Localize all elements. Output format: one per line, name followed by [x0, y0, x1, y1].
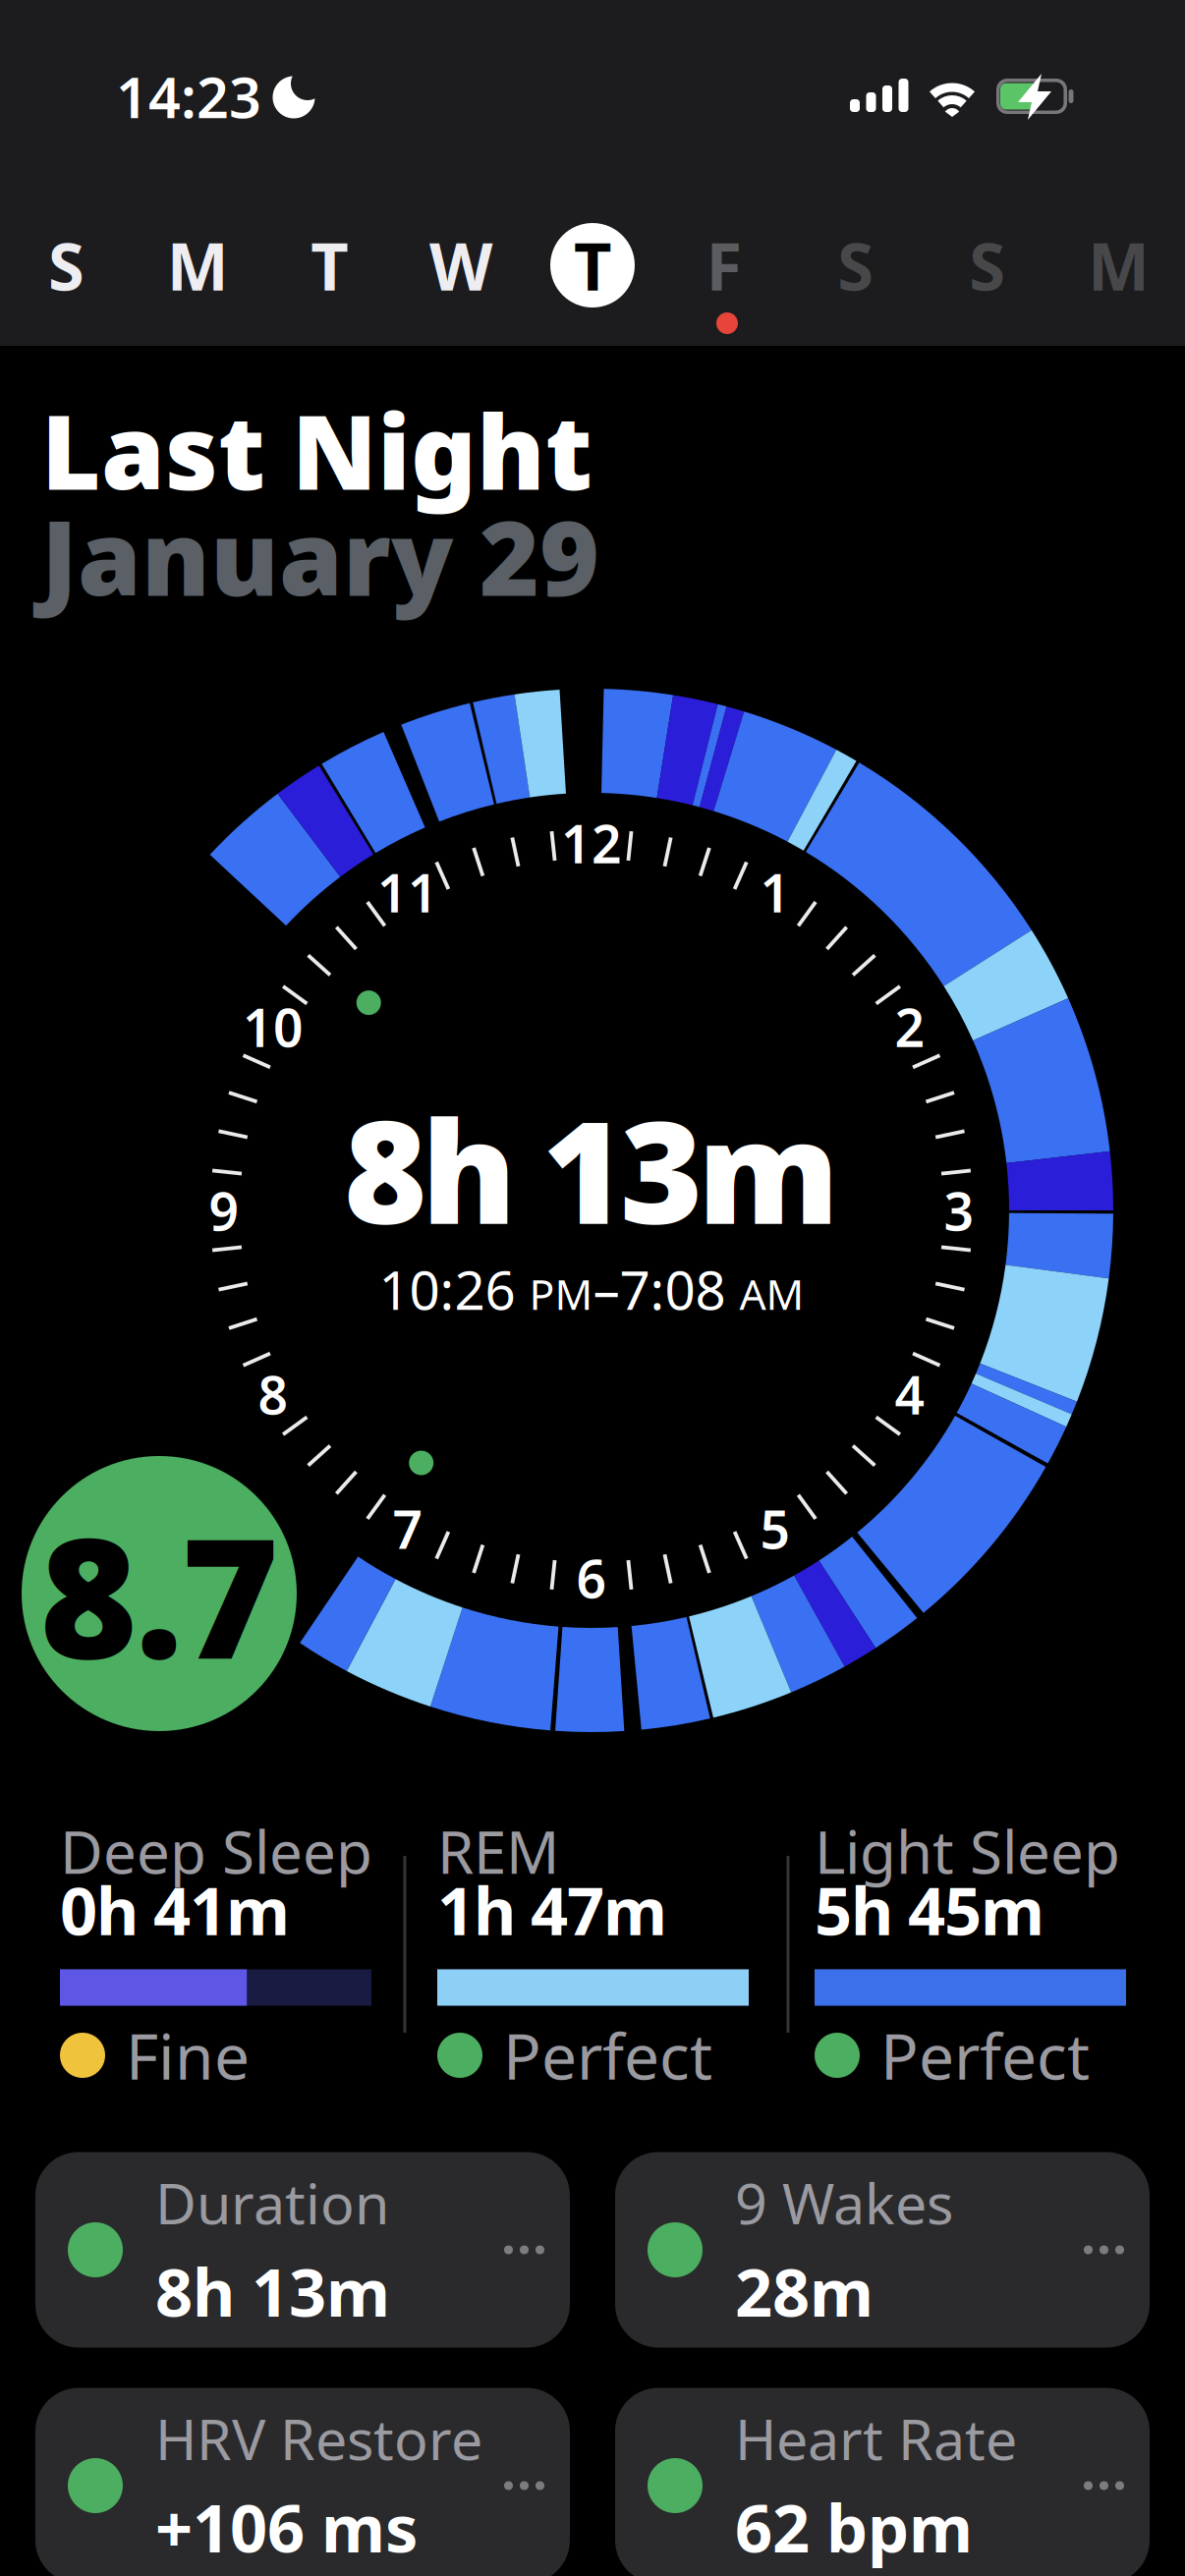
staticText: S: [48, 222, 84, 309]
staticText: 3: [944, 1176, 974, 1245]
staticText: Deep Sleep: [60, 1812, 372, 1890]
staticText: 8h 13m: [344, 1075, 839, 1263]
staticText: 9 Wakes: [735, 2165, 953, 2240]
staticText: 7: [393, 1494, 423, 1563]
staticText: 11: [377, 857, 438, 927]
staticText: 1h 47m: [437, 1866, 667, 1953]
button[interactable]: 9 Wakes: [615, 2152, 1150, 2348]
button[interactable]: S: [933, 211, 1041, 319]
staticText: 5h 45m: [815, 1866, 1044, 1953]
staticText: AM: [739, 1266, 804, 1321]
staticText: 4: [895, 1359, 925, 1429]
staticText: Perfect: [503, 2014, 712, 2097]
staticText: T: [311, 222, 348, 309]
staticText: F: [706, 222, 742, 309]
button[interactable]: W: [407, 211, 515, 319]
staticText: 14:23: [116, 59, 261, 134]
staticText: 8h 13m: [155, 2248, 390, 2335]
staticText: 62 bpm: [735, 2483, 973, 2570]
staticText: W: [429, 222, 492, 309]
button[interactable]: S: [802, 211, 910, 319]
staticText: Last Night: [41, 382, 592, 518]
staticText: 10: [243, 992, 304, 1061]
button[interactable]: F: [670, 211, 778, 319]
staticText: REM: [437, 1812, 559, 1890]
button[interactable]: HRV Restore: [35, 2388, 570, 2576]
button[interactable]: Heart Rate: [615, 2388, 1150, 2576]
button[interactable]: M: [144, 211, 252, 319]
staticText: M: [1088, 222, 1150, 309]
staticText: HRV Restore: [155, 2401, 482, 2476]
staticText: 6: [576, 1543, 607, 1613]
staticText: 8: [258, 1359, 288, 1429]
button[interactable]: S: [12, 211, 120, 319]
button[interactable]: Duration: [35, 2152, 570, 2348]
button[interactable]: M: [1065, 211, 1173, 319]
staticText: 12: [561, 808, 622, 878]
staticText: 1: [760, 857, 790, 927]
staticText: Light Sleep: [815, 1812, 1120, 1890]
button[interactable]: T: [538, 211, 647, 319]
staticText: +106 ms: [155, 2483, 418, 2570]
staticText: M: [167, 222, 229, 309]
staticText: Fine: [126, 2014, 250, 2097]
staticText: 9: [209, 1176, 239, 1245]
staticText: Duration: [155, 2165, 389, 2240]
staticText: 28m: [735, 2248, 874, 2335]
staticText: T: [574, 222, 611, 309]
staticText: 0h 41m: [60, 1866, 290, 1953]
staticText: 5: [760, 1494, 790, 1563]
staticText: PM: [529, 1266, 593, 1321]
staticText: S: [969, 222, 1005, 309]
staticText: Perfect: [880, 2014, 1090, 2097]
staticText: January 29: [41, 488, 599, 624]
staticText: –7:08: [593, 1253, 739, 1325]
staticText: Heart Rate: [735, 2401, 1017, 2476]
staticText: S: [837, 222, 874, 309]
staticText: 10:26: [379, 1253, 529, 1325]
button[interactable]: T: [275, 211, 383, 319]
staticText: 8.7: [40, 1483, 279, 1704]
staticText: 2: [895, 992, 925, 1061]
